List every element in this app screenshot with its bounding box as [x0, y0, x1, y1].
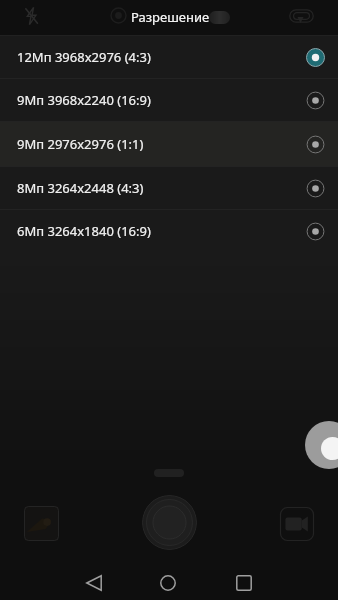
- button[interactable]: 9Мп 3968x2240 (16:9): [0, 79, 338, 122]
- button[interactable]: 6Мп 3264x1840 (16:9): [0, 210, 338, 253]
- button[interactable]: Shutter: [142, 495, 197, 550]
- button[interactable]: Gallery: [24, 506, 59, 541]
- staticText: 9Мп 2976x2976 (1:1): [17, 135, 144, 153]
- button[interactable]: Recents: [236, 575, 272, 600]
- button[interactable]: 8Мп 3264x2448 (4:3): [0, 167, 338, 210]
- staticText: 9Мп 3968x2240 (16:9): [17, 91, 151, 109]
- button[interactable]: 12Мп 3968x2976 (4:3): [0, 36, 338, 79]
- button[interactable]: Back: [86, 575, 122, 600]
- button[interactable]: Home: [160, 575, 196, 600]
- button[interactable]: Zoom slider: [305, 421, 338, 469]
- staticText: 8Мп 3264x2448 (4:3): [17, 179, 144, 197]
- staticText: Разрешение: [131, 8, 210, 26]
- button[interactable]: Video mode: [280, 507, 314, 541]
- button[interactable]: Switch camera: [289, 9, 314, 23]
- staticText: 12Мп 3968x2976 (4:3): [17, 48, 151, 66]
- button[interactable]: 9Мп 2976x2976 (1:1): [0, 122, 338, 167]
- staticText: 6Мп 3264x1840 (16:9): [17, 222, 151, 240]
- button[interactable]: Flash off: [25, 7, 38, 25]
